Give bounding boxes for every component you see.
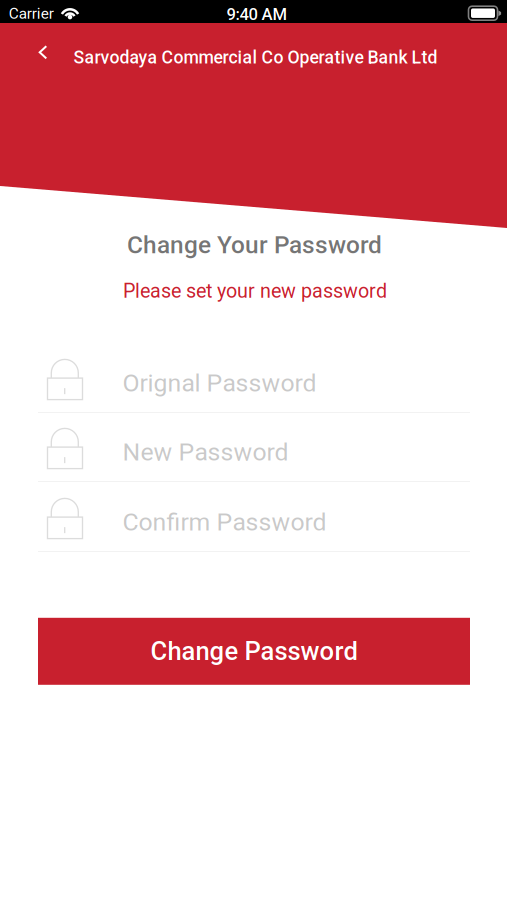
staticText: Orignal Password xyxy=(122,368,316,398)
staticText: Carrier xyxy=(9,4,54,22)
staticText: Sarvodaya Commercial Co Operative Bank L… xyxy=(73,47,437,68)
button[interactable]: Confirm Password xyxy=(38,483,470,552)
staticText: Change Password xyxy=(150,636,357,666)
button[interactable]: Change Password xyxy=(38,618,470,685)
button[interactable]: New Password xyxy=(38,413,470,482)
staticText: Please set your new password xyxy=(123,279,387,302)
staticText: Confirm Password xyxy=(122,507,326,537)
staticText: Change Your Password xyxy=(127,231,382,259)
staticText: 9:40 AM xyxy=(226,4,287,24)
button[interactable]: Back xyxy=(21,30,65,74)
staticText: New Password xyxy=(122,437,288,467)
button[interactable]: Orignal Password xyxy=(38,344,470,413)
